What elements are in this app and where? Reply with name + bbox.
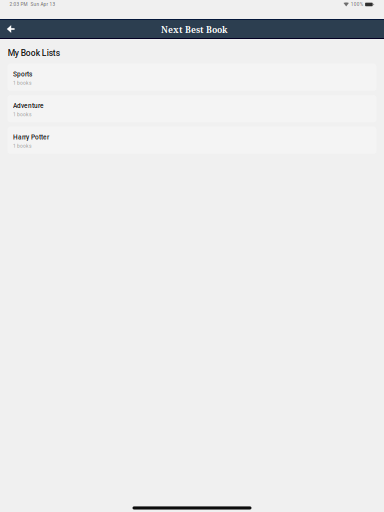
- button[interactable]: Harry Potter: [7, 127, 376, 154]
- staticText: 1 books: [13, 112, 32, 117]
- staticText: Adventure: [13, 102, 44, 110]
- staticText: 1 books: [13, 80, 32, 86]
- staticText: Harry Potter: [13, 133, 49, 141]
- staticText: Next Best Book: [161, 24, 228, 35]
- staticText: Sports: [13, 70, 32, 78]
- button[interactable]: Sports: [7, 64, 376, 91]
- button[interactable]: Adventure: [7, 95, 376, 122]
- staticText: 1 books: [13, 143, 32, 149]
- staticText: My Book Lists: [8, 48, 60, 58]
- staticText: Sun Apr 13: [31, 2, 56, 7]
- staticText: 2:03 PM: [9, 2, 27, 7]
- staticText: 100%: [351, 2, 363, 7]
- button[interactable]: Back: [2, 19, 19, 39]
